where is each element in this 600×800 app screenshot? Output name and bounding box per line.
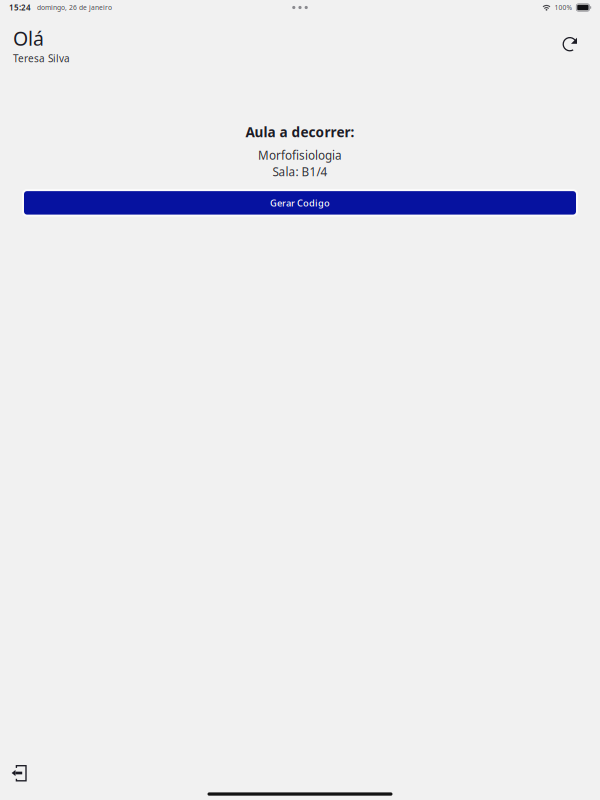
staticText: 15:24 [9, 2, 31, 13]
button[interactable]: Atualizar [555, 25, 583, 58]
staticText: Morfofisiologia [258, 147, 342, 163]
staticText: 100% [554, 3, 572, 12]
staticText: Olá [13, 25, 44, 51]
staticText: Sala: B1/4 [272, 164, 327, 180]
staticText: Teresa Silva [13, 51, 70, 65]
staticText: Aula a decorrer: [245, 123, 354, 141]
button[interactable]: Gerar Codigo [22, 189, 578, 217]
staticText: domingo, 26 de janeiro [37, 3, 112, 12]
staticText: Gerar Codigo [270, 197, 330, 209]
button[interactable]: Terminar sessão [5, 759, 33, 788]
